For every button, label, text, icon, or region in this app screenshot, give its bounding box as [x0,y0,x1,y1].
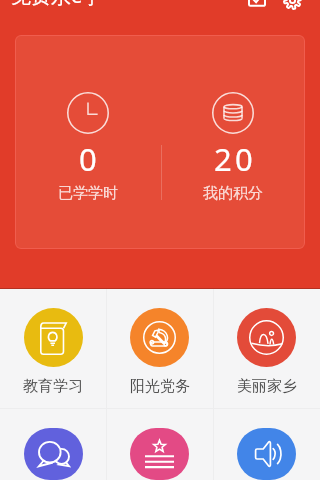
button[interactable]: Tasks [244,0,270,13]
staticText: 免费永e学 [11,0,103,9]
button[interactable]: 互动交流 [0,409,106,480]
button[interactable]: 积分排行 [106,409,213,480]
button[interactable]: 通知公告 [213,409,320,480]
button[interactable]: 0 [15,35,305,249]
button[interactable]: 美丽家乡 [213,289,320,408]
staticText: 我的积分 [203,184,263,203]
staticText: 0 [79,138,100,180]
staticText: 20 [214,138,256,180]
staticText: 阳光党务 [130,377,190,396]
staticText: 美丽家乡 [237,377,297,396]
staticText: 已学学时 [58,184,118,203]
staticText: 教育学习 [23,377,83,396]
button[interactable]: 阳光党务 [106,289,213,408]
button[interactable]: Settings [279,0,305,13]
button[interactable]: 教育学习 [0,289,106,408]
